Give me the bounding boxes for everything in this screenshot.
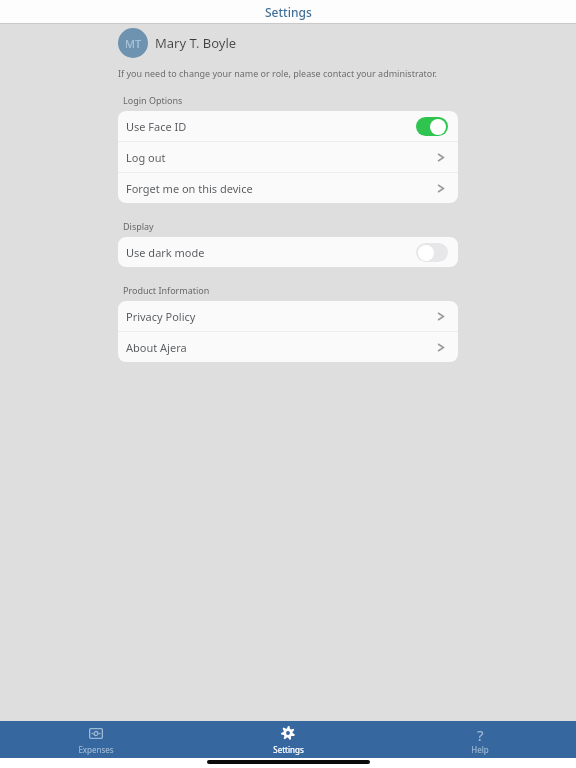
staticText: Product Information [123,284,210,296]
button[interactable]: ? [384,721,576,758]
staticText: Help [471,744,489,755]
staticText: Settings [265,4,312,20]
staticText: Log out [126,150,435,165]
staticText: Display [123,220,154,232]
button[interactable]: Use Face ID [118,111,458,141]
button[interactable]: Privacy Policy [118,301,458,331]
staticText: Forget me on this device [126,181,435,196]
button[interactable]: Log out [118,142,458,172]
staticText: MT [125,36,142,51]
button[interactable]: Forget me on this device [118,173,458,203]
button[interactable]: Use dark mode [118,237,458,267]
staticText: Use dark mode [126,245,416,260]
button[interactable]: Settings [192,721,384,758]
button[interactable]: Expenses [0,721,192,758]
staticText: Expenses [78,744,114,755]
staticText: Privacy Policy [126,309,435,324]
staticText: If you need to change your name or role,… [118,67,437,79]
staticText: Use Face ID [126,119,416,134]
staticText: Login Options [123,94,183,106]
button[interactable]: Switch off [416,243,448,262]
staticText: ? [477,725,484,741]
button[interactable]: Switch on [416,117,448,136]
button[interactable]: About Ajera [118,332,458,362]
staticText: Settings [273,744,304,755]
staticText: Mary T. Boyle [155,34,237,52]
staticText: About Ajera [126,340,435,355]
